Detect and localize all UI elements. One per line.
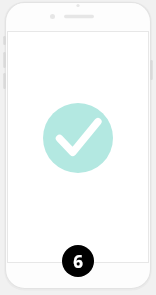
staticText: 6 <box>73 250 83 273</box>
button[interactable]: 6 <box>62 245 94 277</box>
button[interactable]: Success <box>43 103 113 173</box>
